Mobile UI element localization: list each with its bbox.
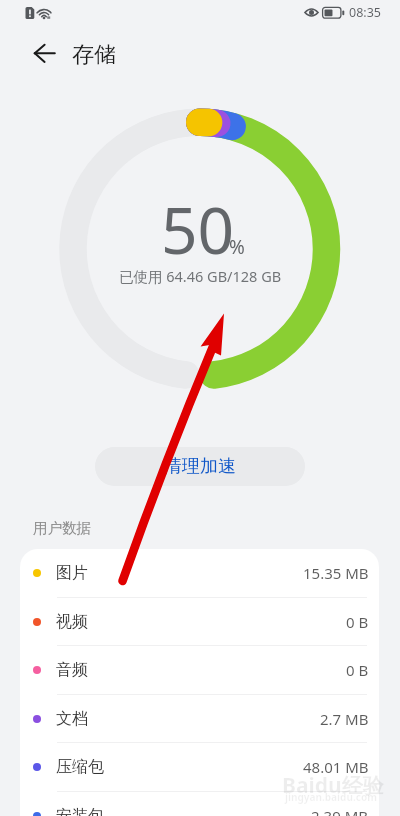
staticText: 压缩包	[56, 757, 104, 777]
staticText: 2.39 MB	[311, 806, 369, 816]
staticText: %	[229, 234, 245, 260]
staticText: 2.7 MB	[320, 709, 369, 729]
button[interactable]: 音频	[20, 646, 379, 694]
staticText: 音频	[56, 660, 88, 680]
staticText: 0 B	[346, 660, 369, 680]
staticText: 48.01 MB	[303, 757, 369, 777]
staticText: Baidu经验	[282, 771, 384, 800]
staticText: 50	[161, 186, 235, 273]
button[interactable]: 安装包	[20, 792, 379, 816]
staticText: 用户数据	[33, 519, 91, 537]
staticText: 文档	[56, 709, 88, 729]
button[interactable]: 视频	[20, 598, 379, 646]
staticText: 0 B	[346, 612, 369, 632]
button[interactable]: 图片	[20, 549, 379, 597]
staticText: 图片	[56, 563, 88, 583]
button[interactable]: 清理加速	[95, 447, 305, 486]
staticText: 存储	[72, 41, 116, 69]
staticText: 15.35 MB	[303, 563, 369, 583]
staticText: 清理加速	[164, 455, 236, 478]
button[interactable]: 压缩包	[20, 743, 379, 791]
staticText: 08:35	[349, 4, 381, 21]
staticText: 安装包	[56, 806, 104, 816]
staticText: 已使用 64.46 GB/128 GB	[119, 266, 282, 286]
staticText: jingyan.baidu.com	[285, 790, 377, 804]
button[interactable]: Back	[26, 32, 66, 72]
staticText: 视频	[56, 612, 88, 632]
button[interactable]: 文档	[20, 695, 379, 743]
